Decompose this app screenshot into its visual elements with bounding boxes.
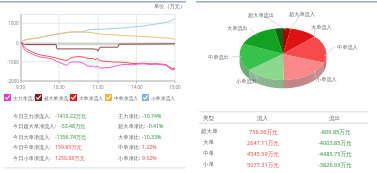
- button[interactable]: 超大单净流入: [35, 94, 73, 101]
- button[interactable]: [199, 126, 368, 137]
- staticText: 10:30: [53, 84, 65, 90]
- staticText: 单位（万元）: [154, 3, 186, 10]
- staticText: -10.33%: [142, 133, 162, 140]
- staticText: 超大单净比:: [118, 122, 146, 129]
- staticText: -4485.75万元: [318, 150, 352, 158]
- staticText: 中单: [203, 150, 215, 157]
- staticText: -10.74%: [142, 112, 162, 119]
- staticText: 9.52%: [142, 154, 157, 161]
- staticText: -2000: [7, 78, 19, 84]
- staticText: 2647.11万元: [247, 139, 279, 147]
- staticText: -0.41%: [147, 122, 164, 129]
- staticText: 0: [16, 40, 19, 46]
- staticText: 14:00: [131, 84, 143, 90]
- staticText: 流入: [257, 115, 269, 122]
- button[interactable]: [199, 159, 368, 170]
- staticText: 超大单: [201, 128, 218, 135]
- button[interactable]: 小单净流入: [142, 94, 175, 101]
- staticText: -1000: [7, 59, 19, 65]
- staticText: -4003.85万元: [318, 139, 352, 147]
- staticText: 4545.59万元: [247, 150, 279, 158]
- staticText: 11:30: [92, 84, 104, 90]
- staticText: 流出: [329, 115, 341, 122]
- staticText: 中单净比:: [118, 143, 141, 150]
- staticText: 今日主力净流入:: [13, 112, 51, 119]
- staticText: 15:00: [169, 84, 181, 90]
- staticText: 今日超大单净流入:: [13, 122, 56, 129]
- staticText: 中单流出: [208, 54, 229, 61]
- button[interactable]: 中单净流入: [105, 94, 138, 101]
- staticText: 小单: [203, 161, 215, 168]
- button[interactable]: 主力净流入: [4, 94, 37, 101]
- staticText: 大单流入: [311, 24, 332, 31]
- staticText: 主力净比:: [118, 112, 141, 119]
- staticText: 小单流入: [316, 76, 337, 83]
- staticText: 5077.31万元: [247, 161, 279, 169]
- button[interactable]: [199, 137, 368, 148]
- staticText: 今日中单净流入:: [13, 143, 51, 150]
- staticText: 大单流出: [227, 25, 248, 32]
- staticText: -53.48万元: [60, 122, 86, 129]
- staticText: 1250.38万元: [55, 154, 85, 161]
- staticText: 9:30: [16, 84, 26, 90]
- staticText: 中单流入: [337, 44, 358, 51]
- staticText: 类型: [203, 115, 215, 122]
- staticText: 超大单流出: [248, 12, 274, 19]
- button[interactable]: [199, 148, 368, 159]
- staticText: 超大单净流入: [44, 95, 73, 101]
- staticText: 超大单流入: [289, 11, 315, 18]
- staticText: 大单: [203, 139, 215, 146]
- staticText: -1410.22万元: [55, 112, 87, 119]
- staticText: 小单流出: [236, 78, 257, 85]
- staticText: -809.85万元: [320, 128, 351, 136]
- staticText: 中单净流入: [114, 95, 138, 101]
- staticText: 1000: [8, 20, 19, 26]
- staticText: 主力净流入: [13, 95, 37, 101]
- staticText: -3826.93万元: [318, 161, 352, 169]
- staticText: 今日大单净流入:: [13, 133, 51, 140]
- staticText: 大单净比:: [118, 133, 141, 140]
- staticText: 小单净比:: [118, 154, 141, 161]
- staticText: 159.85万元: [55, 143, 82, 150]
- staticText: -1356.74万元: [55, 133, 87, 140]
- button[interactable]: 大单净流入: [70, 94, 103, 101]
- staticText: 大单净流入: [79, 95, 103, 101]
- staticText: 今日小单净流入:: [13, 154, 51, 161]
- staticText: 756.36万元: [249, 128, 278, 136]
- staticText: 1.22%: [142, 143, 157, 150]
- staticText: 小单净流入: [151, 95, 175, 101]
